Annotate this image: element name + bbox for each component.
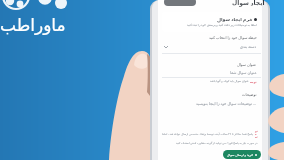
staticText: در صورت نیاز به پاسخ فوری می توانید از گ…: [176, 141, 258, 145]
staticText: توجه: [250, 80, 257, 83]
staticText: توضیحات سوال خود را اینجا بنویسید ...: [196, 101, 257, 106]
staticText: فرم ایجاد سوال: [217, 16, 253, 22]
staticText: خرید و ارسال سوال: [227, 153, 254, 157]
staticText: عنوان سوال: [237, 62, 257, 67]
button[interactable]: توضیحات: [162, 98, 261, 122]
button[interactable]: عنوان سوال: [162, 66, 261, 76]
button[interactable]: ایجاد سوال: [232, 0, 265, 7]
staticText: توجه:: [255, 129, 258, 139]
staticText: عنوان سوال باید کوتاه و گویا باشد: [210, 79, 249, 83]
staticText: عنوان سوال شما: [230, 70, 257, 75]
staticText: دسته بندی: [240, 44, 257, 49]
staticText: لطفا به توضیحات زیر دقت کنید و پرسش خود …: [187, 23, 257, 27]
button[interactable]: دسته بندی: [162, 41, 261, 52]
staticText: پاسخ شما حداکثر تا ۲۴ ساعت آینده توسط پز…: [162, 132, 254, 136]
staticText: توضیحات: [242, 92, 257, 96]
staticText: حیطه سوال خود را انتخاب کنید: [209, 35, 257, 40]
button[interactable]: فرم ایجاد سوال: [162, 12, 261, 32]
button[interactable]: خرید و ارسال سوال: [223, 150, 261, 159]
staticText: ماوراطب: [0, 15, 66, 35]
